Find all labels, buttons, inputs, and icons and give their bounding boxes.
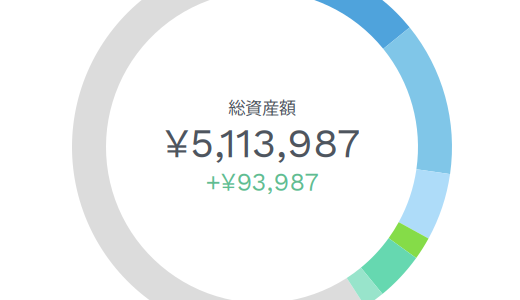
- staticText: +¥93,987: [205, 167, 318, 197]
- button[interactable]: 総資産額: [147, 55, 377, 215]
- staticText: ¥5,113,987: [164, 119, 360, 167]
- staticText: 総資産額: [228, 94, 296, 120]
